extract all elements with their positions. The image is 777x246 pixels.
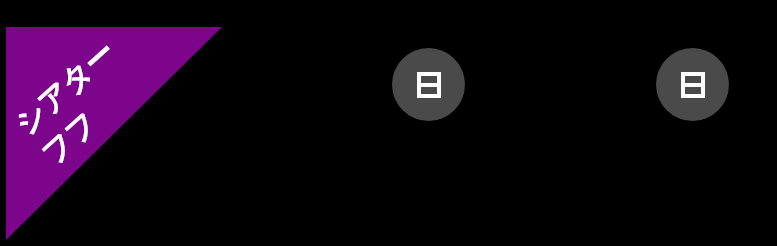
button[interactable]: 日 xyxy=(392,48,465,121)
button[interactable]: シアター xyxy=(6,27,222,240)
button[interactable]: 日 xyxy=(656,48,729,121)
staticText: シアター フフ xyxy=(7,33,150,173)
